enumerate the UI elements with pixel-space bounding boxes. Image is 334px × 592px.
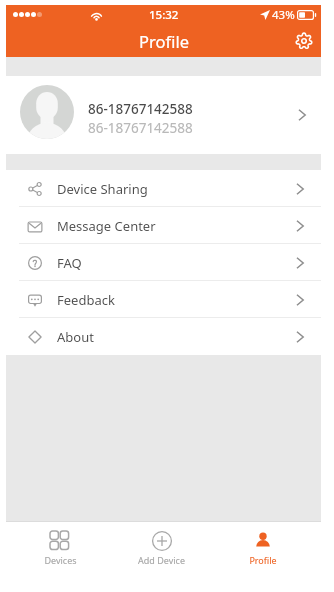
staticText: Add Device (138, 554, 185, 566)
staticText: About (57, 328, 296, 346)
staticText: Device Sharing (57, 180, 296, 198)
staticText: 86-18767142588 (88, 100, 193, 118)
staticText: Feedback (57, 291, 296, 309)
button[interactable]: Settings (289, 26, 319, 56)
button[interactable]: Message Center (6, 207, 321, 244)
staticText: Profile (139, 30, 189, 52)
staticText: Devices (44, 554, 77, 566)
button[interactable]: Profile (212, 522, 313, 566)
staticText: 15:32 (149, 7, 179, 23)
button[interactable]: About (6, 318, 321, 355)
button[interactable]: Device Sharing (6, 170, 321, 207)
staticText: 43% (272, 7, 295, 23)
button[interactable]: Add Device (111, 522, 212, 566)
staticText: Message Center (57, 217, 296, 235)
staticText: Profile (249, 554, 277, 566)
button[interactable]: 86-18767142588 (6, 76, 321, 154)
staticText: 86-18767142588 (88, 119, 193, 137)
staticText: FAQ (57, 254, 296, 272)
button[interactable]: FAQ (6, 244, 321, 281)
button[interactable]: Devices (9, 522, 111, 566)
button[interactable]: Feedback (6, 281, 321, 318)
